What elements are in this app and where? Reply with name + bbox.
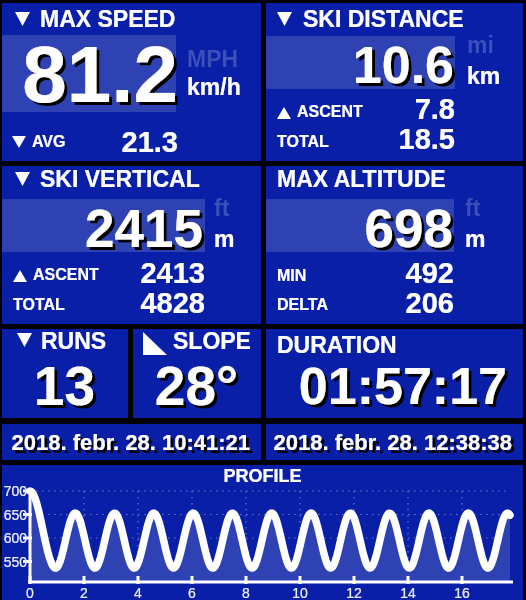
staticText: 2: [70, 585, 98, 600]
staticText: m: [465, 226, 486, 252]
staticText: ft: [465, 195, 481, 221]
staticText: 28°: [136, 358, 241, 418]
staticText: 698: [269, 202, 456, 261]
staticText: 13: [5, 358, 98, 418]
staticText: 2018. febr. 28. 12:38:38: [266, 430, 512, 455]
button[interactable]: Slope: [133, 329, 261, 418]
staticText: 18.5: [266, 123, 455, 155]
staticText: 4: [124, 585, 152, 600]
staticText: RUNS: [41, 329, 107, 354]
staticText: MPH: [187, 46, 239, 72]
staticText: 21.3: [2, 126, 178, 158]
staticText: MAX SPEED: [40, 6, 176, 32]
staticText: 650: [2, 507, 27, 523]
staticText: 10: [286, 585, 314, 600]
staticText: SKI VERTICAL: [40, 166, 200, 192]
staticText: km: [467, 63, 501, 89]
staticText: 2413: [2, 257, 205, 289]
staticText: 16: [448, 585, 476, 600]
staticText: 600: [2, 530, 27, 546]
staticText: 492: [266, 257, 454, 289]
staticText: 2018. febr. 28. 10:41:21: [2, 430, 250, 455]
button[interactable]: Ski distance: [266, 3, 523, 161]
staticText: 13: [2, 355, 95, 416]
staticText: ft: [214, 195, 230, 221]
staticText: AVG: [32, 133, 66, 151]
button[interactable]: Start time: [2, 424, 261, 460]
staticText: 2018. febr. 28. 12:38:38: [269, 433, 515, 458]
staticText: 01:57:17: [269, 360, 510, 418]
staticText: mi: [467, 32, 494, 58]
button[interactable]: Runs: [2, 329, 128, 418]
staticText: 10.6: [266, 36, 454, 94]
staticText: TOTAL: [277, 133, 329, 151]
button[interactable]: Max speed: [2, 3, 261, 161]
staticText: SKI DISTANCE: [303, 6, 464, 32]
staticText: 12: [340, 585, 368, 600]
staticText: 0: [16, 585, 44, 600]
staticText: 206: [266, 287, 454, 319]
staticText: 10.6: [269, 39, 457, 97]
button[interactable]: Max altitude: [266, 166, 523, 324]
staticText: TOTAL: [13, 296, 65, 314]
staticText: PROFILE: [2, 466, 523, 486]
staticText: MIN: [277, 267, 307, 285]
staticText: 6: [178, 585, 206, 600]
staticText: km/h: [187, 74, 241, 100]
staticText: 550: [2, 554, 27, 570]
button[interactable]: Ski vertical: [2, 166, 261, 324]
button[interactable]: Elevation profile: [2, 465, 523, 600]
staticText: DELTA: [277, 296, 328, 314]
staticText: 81.2: [2, 30, 178, 119]
staticText: ASCENT: [33, 266, 99, 284]
button[interactable]: Duration: [266, 329, 523, 418]
staticText: 700: [2, 483, 27, 499]
staticText: 7.8: [266, 93, 455, 125]
staticText: 4828: [2, 287, 205, 319]
staticText: 01:57:17: [266, 357, 507, 415]
staticText: 698: [266, 199, 453, 258]
staticText: MAX ALTITUDE: [277, 166, 446, 192]
staticText: ASCENT: [297, 103, 363, 121]
staticText: 2415: [2, 199, 203, 258]
staticText: m: [214, 226, 235, 252]
button[interactable]: End time: [266, 424, 523, 460]
staticText: 2415: [5, 202, 206, 261]
staticText: DURATION: [277, 332, 397, 358]
staticText: 8: [232, 585, 260, 600]
staticText: SLOPE: [173, 329, 251, 354]
staticText: 2018. febr. 28. 10:41:21: [5, 433, 253, 458]
staticText: 28°: [133, 355, 238, 416]
staticText: 14: [394, 585, 422, 600]
staticText: 81.2: [5, 33, 181, 122]
